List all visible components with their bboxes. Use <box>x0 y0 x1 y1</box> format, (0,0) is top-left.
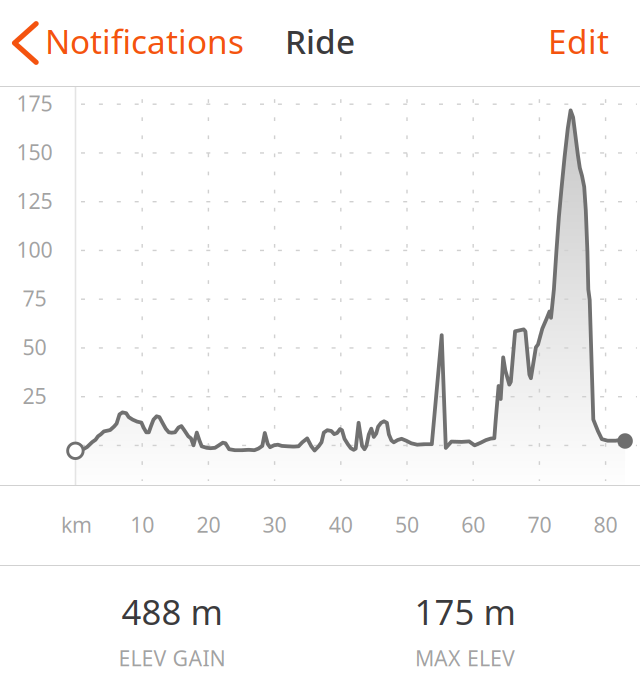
staticText: 30 <box>263 510 287 539</box>
staticText: 50 <box>23 333 47 361</box>
staticText: 80 <box>594 510 618 539</box>
staticText: 125 <box>17 186 53 215</box>
staticText: Edit <box>548 19 609 63</box>
staticText: ELEV GAIN <box>118 644 225 672</box>
staticText: 25 <box>23 381 47 410</box>
staticText: 75 <box>23 284 47 312</box>
staticText: Notifications <box>45 19 244 63</box>
staticText: 20 <box>196 510 220 539</box>
staticText: 100 <box>17 235 53 264</box>
staticText: 70 <box>527 510 551 539</box>
staticText: 175 m <box>414 588 515 634</box>
staticText: 488 m <box>121 588 222 634</box>
staticText: Ride <box>285 19 355 63</box>
staticText: 60 <box>461 510 485 539</box>
staticText: 50 <box>395 510 419 539</box>
staticText: 150 <box>17 138 53 166</box>
staticText: km <box>61 510 92 539</box>
button[interactable]: Edit <box>468 0 640 86</box>
staticText: MAX ELEV <box>415 644 515 672</box>
button[interactable]: Notifications <box>0 0 266 86</box>
staticText: 10 <box>130 510 154 539</box>
staticText: 175 <box>17 89 53 117</box>
staticText: 40 <box>329 510 353 539</box>
